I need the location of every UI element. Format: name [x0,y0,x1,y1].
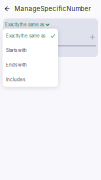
staticText: Ends with [6,62,27,68]
staticText: Starts with [6,48,27,53]
button[interactable]: Starts with [2,43,58,58]
staticText: ManageSpecificNumber [14,5,90,13]
button[interactable]: Back [0,0,14,17]
button[interactable]: Exactly the same as [2,29,58,43]
staticText: Exactly the same as [6,33,45,38]
staticText: Exactly the same as [5,22,44,27]
button[interactable]: Includes [2,72,58,87]
button[interactable]: Ends with [2,58,58,72]
staticText: Includes [6,77,25,82]
